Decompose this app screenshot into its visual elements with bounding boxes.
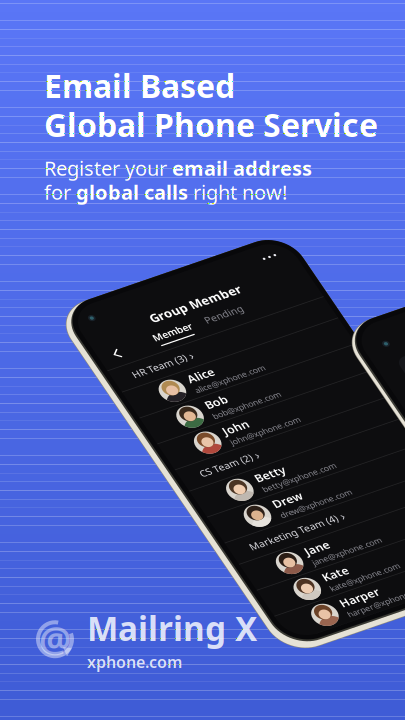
staticText: Pending — [252, 398, 315, 419]
staticText: Bob — [174, 529, 210, 554]
staticText: › — [195, 633, 201, 660]
button[interactable]: Bob — [73, 526, 405, 575]
button[interactable]: Alice — [73, 476, 405, 525]
staticText: xphone.com — [87, 651, 182, 672]
button[interactable]: Back — [91, 400, 113, 426]
button[interactable]: CS Team (2) — [73, 627, 405, 667]
staticText: CS Team (2) — [103, 636, 190, 657]
button[interactable]: John — [73, 576, 405, 625]
button[interactable]: Pending — [252, 398, 315, 425]
staticText: @ — [39, 615, 71, 663]
staticText: Alice — [174, 479, 217, 504]
staticText: Email Based — [44, 64, 235, 107]
staticText: john@xphone.com — [174, 604, 290, 622]
staticText: Member — [165, 398, 230, 419]
staticText: Global Phone Service — [44, 103, 378, 146]
button[interactable]: More — [382, 335, 405, 351]
staticText: › — [198, 441, 204, 468]
staticText: alice@xphone.com — [174, 504, 290, 522]
staticText: for global calls right now! — [44, 179, 287, 205]
button[interactable]: Betty — [73, 668, 405, 717]
staticText: HR Team (3) — [103, 444, 193, 465]
staticText: bob@xphone.com — [174, 554, 287, 572]
button[interactable]: HR Team (3) — [73, 435, 405, 475]
staticText: Mailring X — [87, 606, 257, 650]
staticText: Group Member — [178, 363, 330, 390]
button[interactable]: Member — [165, 398, 230, 425]
staticText: Register your email address — [44, 155, 312, 181]
button[interactable]: @ — [34, 606, 257, 672]
